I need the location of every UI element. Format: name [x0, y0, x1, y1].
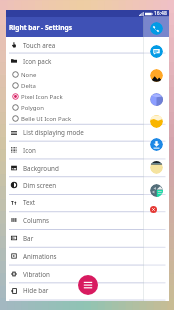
staticText: Icon	[23, 146, 36, 155]
staticText: Dim screen	[23, 181, 57, 190]
button[interactable]: Phone	[150, 22, 163, 35]
button[interactable]: Animations	[6, 247, 169, 265]
button[interactable]: Files	[150, 115, 163, 128]
button[interactable]: Close	[150, 206, 157, 213]
button[interactable]: Columns	[6, 211, 169, 229]
button[interactable]: Background	[6, 159, 169, 177]
button[interactable]: Messages	[150, 45, 163, 58]
staticText: Vibration	[23, 270, 50, 279]
button[interactable]: Delta	[6, 80, 169, 91]
button[interactable]: Play Store	[150, 184, 163, 197]
button[interactable]: Belle UI Icon Pack	[6, 113, 169, 124]
staticText: Text	[23, 198, 36, 207]
button[interactable]: Gallery	[150, 69, 163, 82]
button[interactable]: Hide bar	[6, 282, 169, 299]
button[interactable]: Text	[6, 194, 169, 211]
staticText: Animations	[23, 252, 57, 261]
button[interactable]: Clock	[150, 93, 163, 106]
button[interactable]: Downloads	[150, 138, 163, 151]
staticText: Right bar - Settings	[9, 23, 72, 32]
staticText: Delta	[21, 82, 36, 90]
staticText: 16:48	[154, 10, 167, 17]
button[interactable]: Touch area	[6, 37, 169, 53]
button[interactable]: None	[6, 69, 169, 80]
staticText: Touch area	[23, 41, 56, 50]
staticText: Belle UI Icon Pack	[21, 115, 72, 123]
button[interactable]: List displaying mode	[6, 124, 169, 141]
button[interactable]: Polygon	[6, 102, 169, 113]
staticText: Bar	[23, 234, 34, 243]
button[interactable]: Dim screen	[6, 176, 169, 194]
staticText: None	[21, 71, 37, 79]
staticText: Polygon	[21, 104, 44, 112]
button[interactable]: Menu	[78, 275, 98, 295]
staticText: Icon pack	[23, 57, 52, 66]
staticText: Hide bar	[23, 286, 49, 295]
staticText: Pixel Icon Pack	[21, 93, 63, 101]
staticText: Background	[23, 164, 59, 173]
button[interactable]: Bar	[6, 229, 169, 247]
button[interactable]: Icon	[6, 141, 169, 159]
button[interactable]: Icon pack	[6, 53, 169, 69]
staticText: List displaying mode	[23, 128, 84, 137]
staticText: Columns	[23, 216, 50, 225]
button[interactable]: Pixel Icon Pack	[6, 91, 169, 102]
button[interactable]: Vibration	[6, 265, 169, 283]
button[interactable]: Notes	[150, 161, 163, 174]
